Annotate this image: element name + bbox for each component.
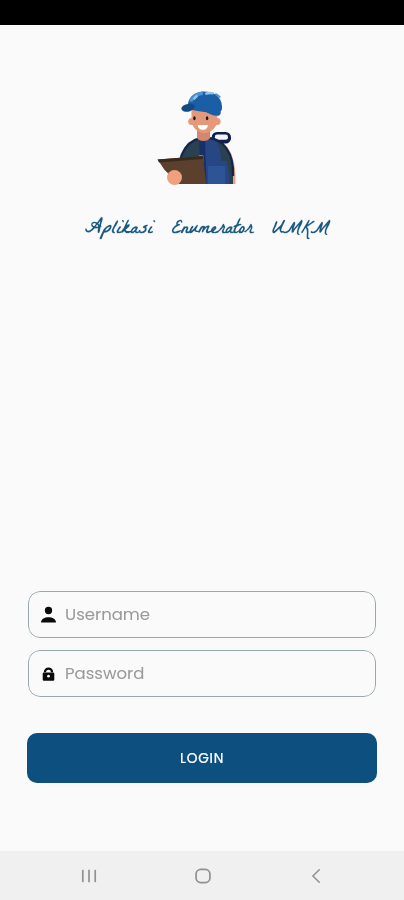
button[interactable]: Back [259,851,372,900]
button[interactable]: Recents [32,851,146,900]
staticText: Aplikasi Enumerator UMKM [5,212,404,248]
button[interactable]: Password [28,650,376,697]
button[interactable]: Home [146,851,259,900]
staticText: LOGIN [180,749,225,768]
button[interactable]: LOGIN [27,733,377,783]
button[interactable]: Username [28,591,376,638]
staticText: Username [65,603,151,626]
staticText: Password [65,662,145,685]
